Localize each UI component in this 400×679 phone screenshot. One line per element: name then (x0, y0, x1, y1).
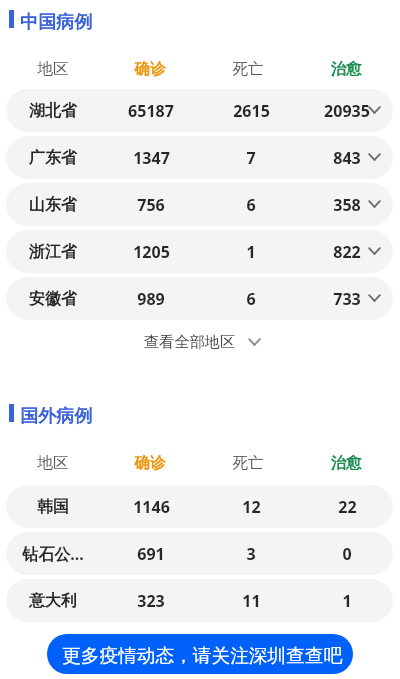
staticText: 756 (137, 194, 165, 216)
staticText: 更多疫情动态，请关注深圳查查吧 (62, 644, 343, 668)
button[interactable]: 意大利 (6, 579, 393, 622)
staticText: 地区 (37, 59, 69, 77)
staticText: 2615 (233, 100, 270, 122)
staticText: 山东省 (29, 195, 77, 215)
button[interactable]: 广东省 (6, 136, 393, 179)
staticText: 治愈 (330, 453, 362, 471)
staticText: 3 (246, 543, 256, 565)
staticText: 治愈 (330, 59, 362, 77)
staticText: 地区 (37, 453, 69, 471)
staticText: 查看全部地区 (144, 332, 236, 351)
staticText: 1205 (133, 241, 170, 263)
button[interactable]: 韩国 (6, 485, 393, 528)
staticText: 7 (246, 147, 256, 169)
button[interactable]: 湖北省 (6, 89, 393, 132)
button[interactable]: 更多疫情动态，请关注深圳查查吧 (47, 634, 353, 674)
staticText: 65187 (128, 100, 174, 122)
button[interactable]: 山东省 (6, 183, 393, 226)
staticText: 死亡 (232, 453, 264, 471)
staticText: 安徽省 (29, 289, 77, 309)
staticText: 0 (342, 543, 352, 565)
staticText: 323 (137, 590, 165, 612)
staticText: 989 (137, 288, 165, 310)
staticText: 843 (333, 147, 361, 169)
staticText: 死亡 (232, 59, 264, 77)
staticText: 11 (242, 590, 261, 612)
button[interactable]: 安徽省 (6, 277, 393, 320)
staticText: 6 (246, 288, 256, 310)
staticText: 韩国 (37, 497, 69, 517)
staticText: 822 (333, 241, 361, 263)
other: 展开 (368, 153, 381, 161)
button[interactable]: 浙江省 (6, 230, 393, 273)
other: 展开 (368, 294, 381, 302)
staticText: 12 (242, 496, 261, 518)
staticText: 6 (246, 194, 256, 216)
staticText: 确诊 (134, 453, 166, 471)
staticText: 691 (137, 543, 165, 565)
staticText: 浙江省 (29, 242, 77, 262)
staticText: 钻石公... (22, 543, 84, 565)
staticText: 1146 (133, 496, 170, 518)
other: 展开 (368, 247, 381, 255)
staticText: 国外病例 (20, 405, 92, 425)
staticText: 1347 (133, 147, 170, 169)
staticText: 1 (342, 590, 352, 612)
staticText: 确诊 (134, 59, 166, 77)
other: 展开 (368, 106, 381, 114)
staticText: 358 (333, 194, 361, 216)
button[interactable]: 查看全部地区 (144, 330, 261, 354)
staticText: 20935 (324, 100, 370, 122)
staticText: 1 (246, 241, 256, 263)
staticText: 733 (333, 288, 361, 310)
staticText: 广东省 (29, 148, 77, 168)
other: 展开 (368, 200, 381, 208)
staticText: 意大利 (29, 591, 77, 611)
staticText: 中国病例 (20, 11, 92, 31)
staticText: 湖北省 (29, 101, 77, 121)
staticText: 22 (338, 496, 357, 518)
button[interactable]: 钻石公... (6, 532, 393, 575)
